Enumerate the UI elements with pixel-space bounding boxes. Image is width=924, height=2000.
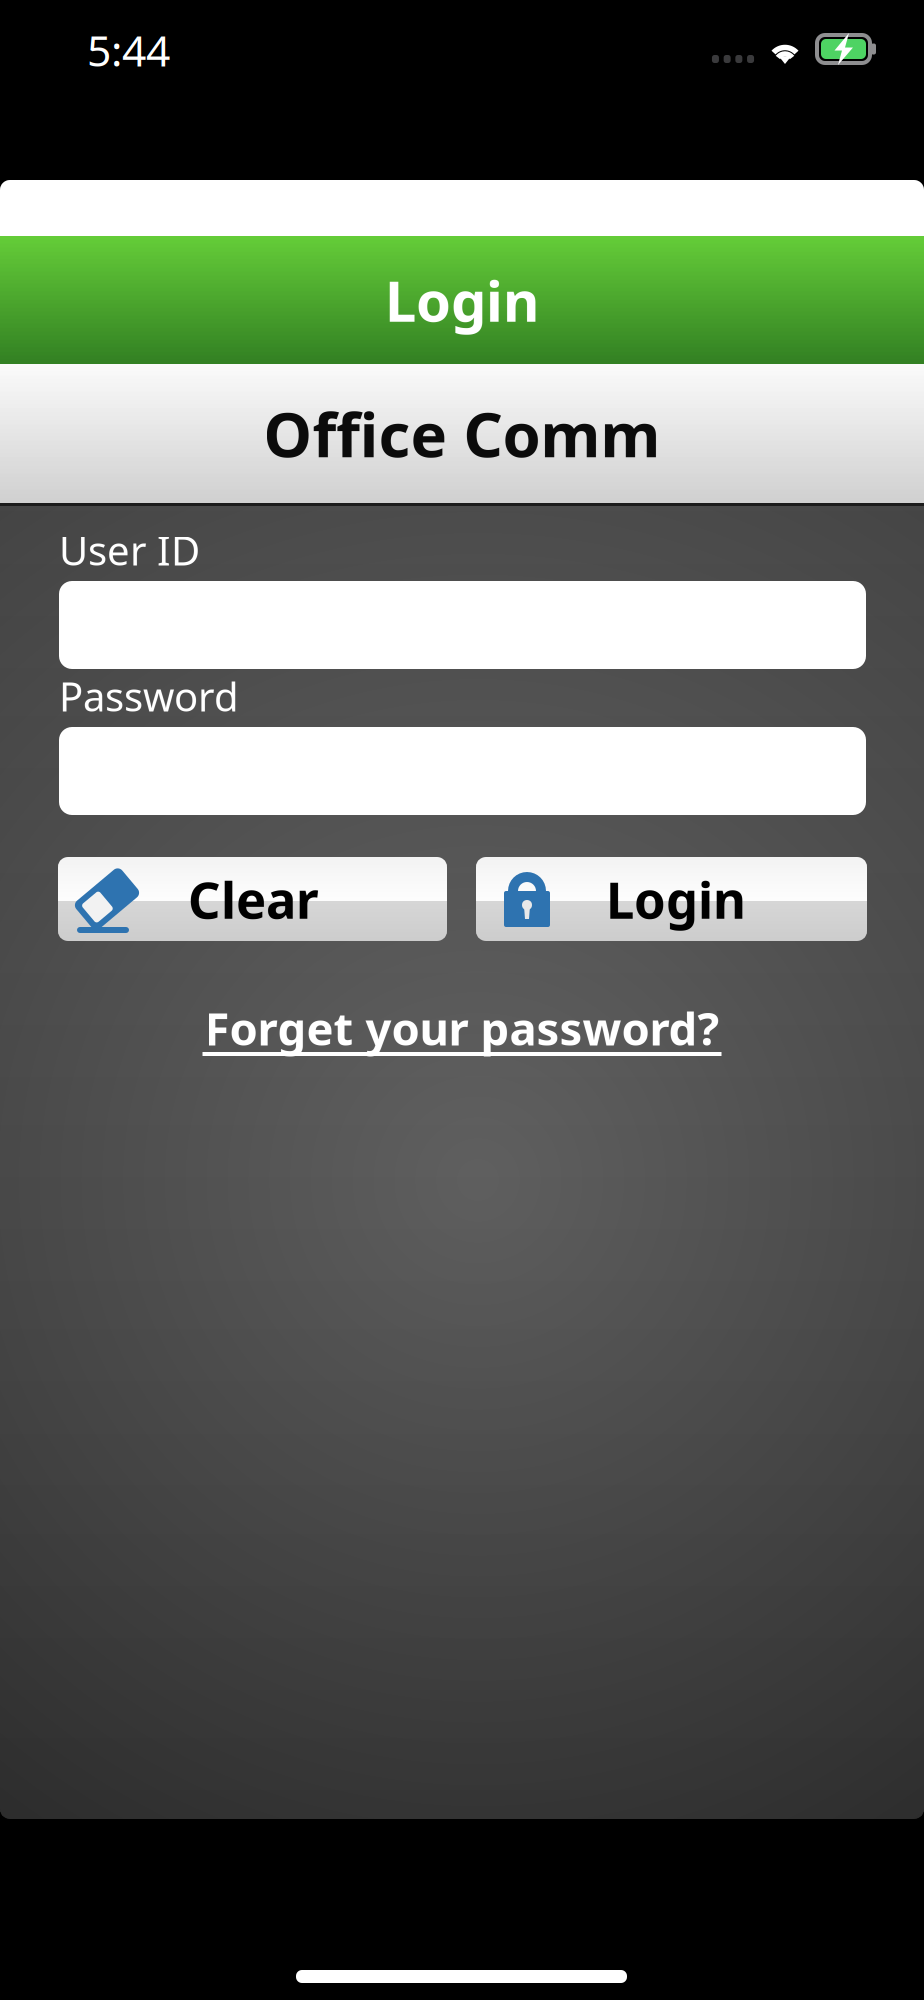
staticText: User ID	[59, 523, 200, 576]
staticText: Clear	[188, 865, 319, 933]
button[interactable]: User ID	[59, 581, 866, 669]
button[interactable]: Password	[59, 727, 866, 815]
button[interactable]: Login	[476, 857, 867, 941]
button[interactable]: Forget your password?	[182, 1004, 742, 1056]
button[interactable]: Clear	[58, 857, 447, 941]
staticText: Password	[59, 669, 239, 722]
staticText: Login	[606, 865, 746, 933]
staticText: 5:44	[87, 22, 170, 78]
staticText: Forget your password?	[204, 998, 719, 1058]
staticText: Office Comm	[263, 393, 660, 474]
staticText: Login	[385, 263, 539, 337]
